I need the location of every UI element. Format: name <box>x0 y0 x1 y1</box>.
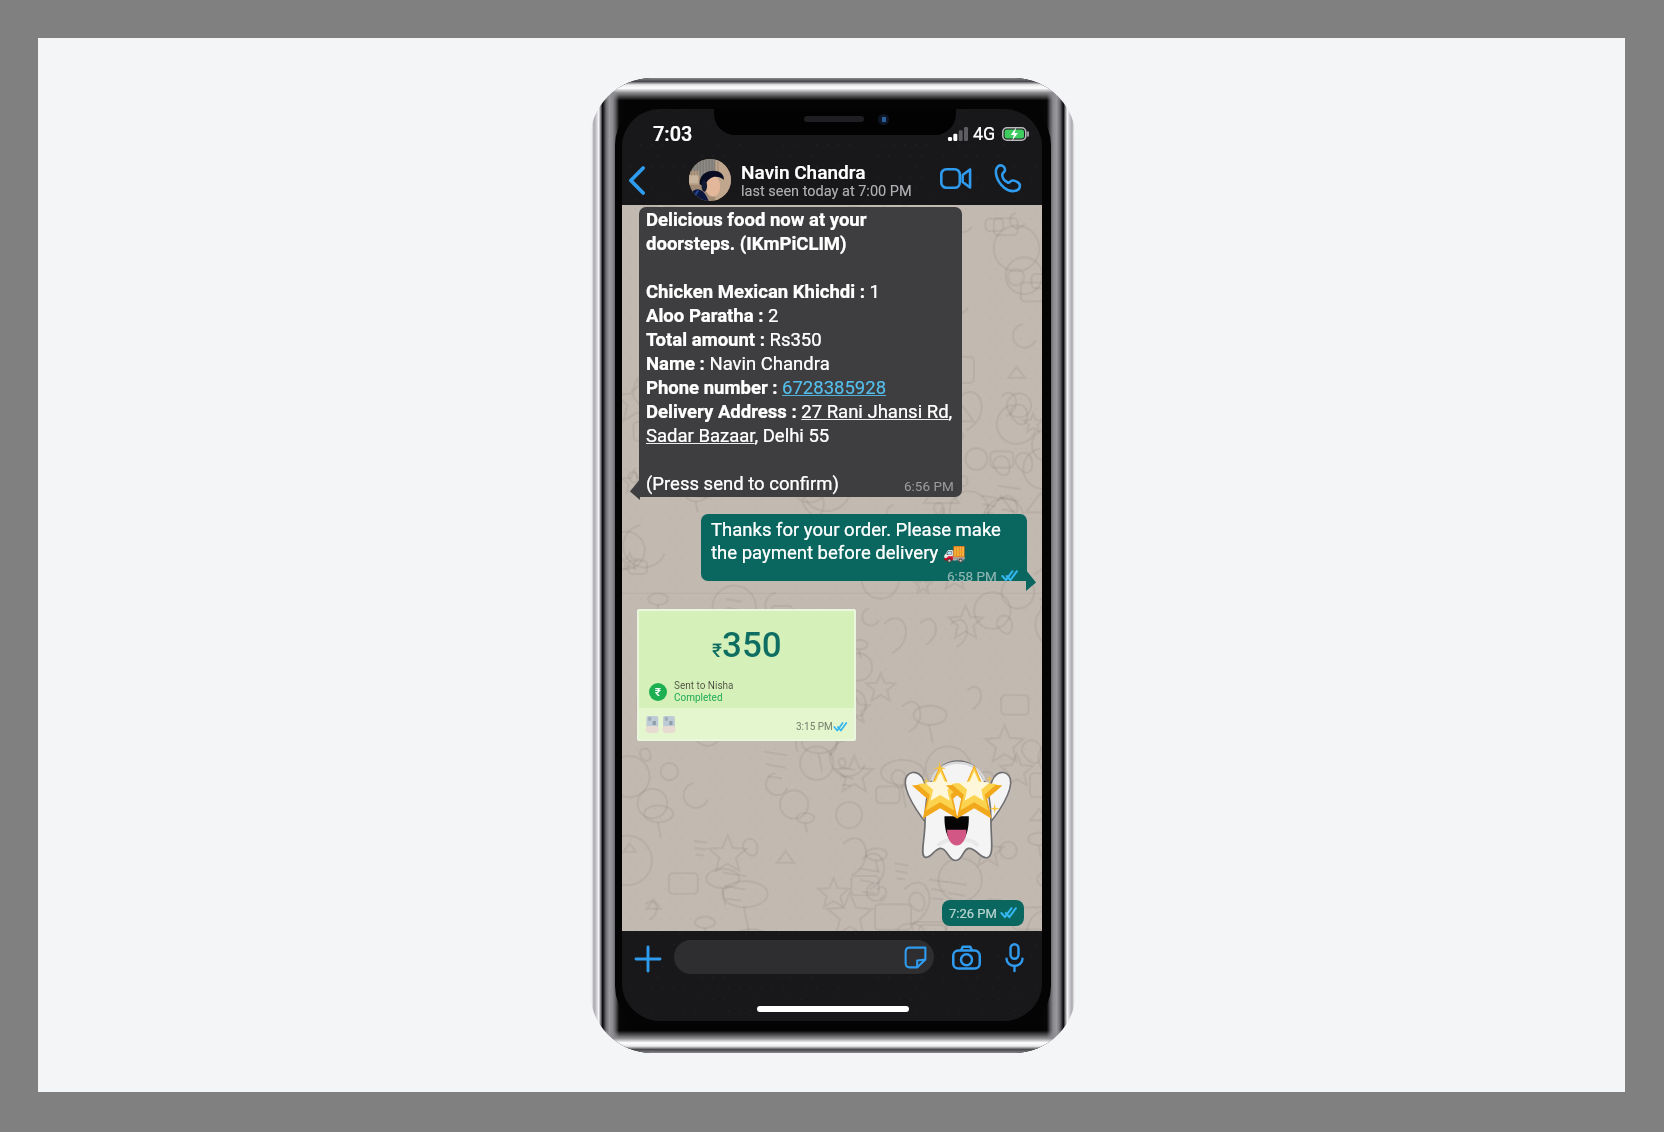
button[interactable] <box>674 940 934 974</box>
staticText: 3:15 PM <box>796 721 833 733</box>
button[interactable]: Camera <box>948 939 984 975</box>
staticText: Sent to Nisha <box>674 680 734 692</box>
staticText: Completed <box>674 692 723 704</box>
button[interactable]: Voice message <box>996 939 1032 975</box>
staticText: last seen today at 7:00 PM <box>741 183 912 200</box>
staticText: 7:26 PM <box>949 906 997 921</box>
button[interactable]: ₹350 <box>637 609 856 741</box>
staticText: Delicious food now at your doorsteps. (I… <box>646 209 957 494</box>
button[interactable]: Attach <box>630 941 666 977</box>
staticText: 4G <box>973 123 996 144</box>
button[interactable]: Thanks for your order. Please make the p… <box>701 514 1027 581</box>
button[interactable]: Delicious food now at your doorsteps. (I… <box>639 207 962 497</box>
staticText: Navin Chandra <box>741 161 866 183</box>
staticText: Thanks for your order. Please make the p… <box>711 519 1019 563</box>
staticText: 6:58 PM <box>947 568 997 581</box>
button[interactable]: Video call <box>932 151 978 205</box>
button[interactable]: 7:26 PM <box>942 900 1024 926</box>
staticText: 7:03 <box>653 122 693 145</box>
button[interactable]: Voice call <box>984 151 1030 205</box>
staticText: ₹ <box>655 686 661 699</box>
staticText: 6:56 PM <box>904 478 954 494</box>
button[interactable]: Contact photo <box>689 159 731 201</box>
staticText: ₹350 <box>712 625 782 666</box>
button[interactable]: Back <box>622 156 658 205</box>
